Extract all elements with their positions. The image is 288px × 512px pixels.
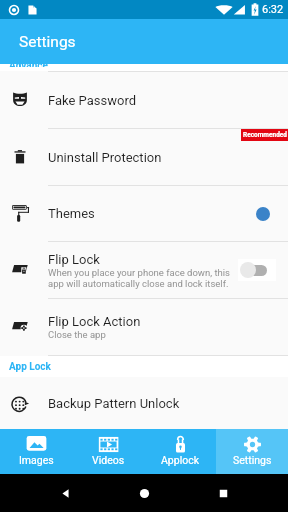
button[interactable]: Settings: [216, 429, 288, 474]
button[interactable]: Home: [130, 479, 158, 507]
staticText: Videos: [92, 454, 125, 466]
staticText: Fake Password: [48, 93, 137, 108]
button[interactable]: Videos: [72, 429, 144, 474]
button[interactable]: Applock: [144, 429, 216, 474]
button[interactable]: Fake Password: [0, 72, 288, 128]
staticText: Images: [19, 454, 54, 466]
button[interactable]: Back: [51, 479, 79, 507]
staticText: Settings: [19, 33, 76, 51]
button[interactable]: Uninstall Protection: [0, 129, 288, 185]
staticText: Applock: [161, 454, 200, 466]
staticText: Recommended: [243, 131, 287, 139]
button[interactable]: Recent apps: [209, 479, 237, 507]
button[interactable]: Themes: [0, 186, 288, 241]
staticText: Settings: [233, 454, 272, 466]
staticText: When you place your phone face down, thi…: [48, 267, 230, 289]
button[interactable]: Flip Lock Action: [0, 299, 288, 355]
button[interactable]: Images: [0, 429, 72, 474]
staticText: Flip Lock Action: [48, 314, 141, 329]
button[interactable]: Flip Lock: [0, 242, 288, 298]
staticText: Flip Lock: [48, 252, 100, 267]
button[interactable]: Backup Pattern Unlock: [0, 377, 288, 429]
staticText: Backup Pattern Unlock: [48, 396, 180, 411]
staticText: 6:32: [262, 3, 284, 16]
staticText: Uninstall Protection: [48, 150, 162, 165]
staticText: Advance: [9, 60, 48, 67]
staticText: Themes: [48, 206, 95, 221]
staticText: App Lock: [9, 361, 51, 373]
staticText: Close the app: [48, 329, 106, 340]
